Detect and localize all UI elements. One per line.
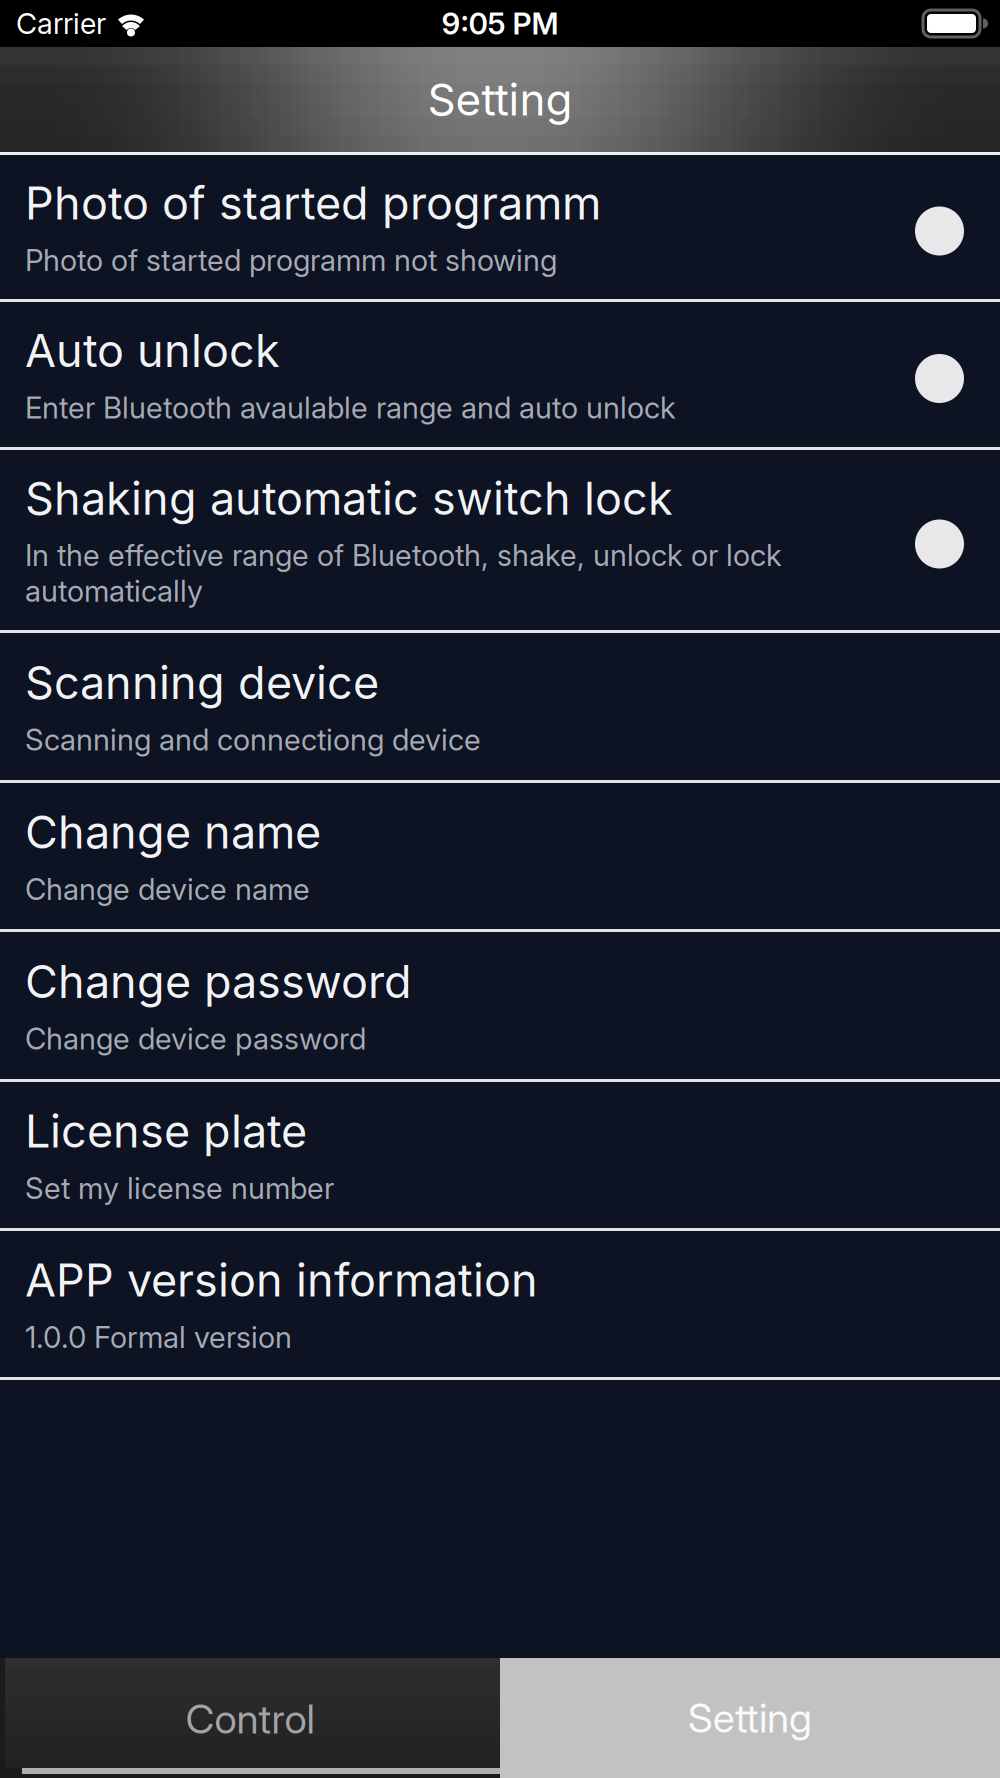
button[interactable]: Change password — [0, 932, 1000, 1082]
staticText: Photo of started programm — [25, 176, 601, 230]
button[interactable]: Control — [0, 1658, 500, 1778]
staticText: Change name — [25, 805, 321, 859]
staticText: APP version information — [25, 1253, 538, 1307]
button[interactable]: Scanning device — [0, 633, 1000, 783]
staticText: Carrier — [16, 6, 106, 41]
button[interactable]: Setting — [500, 1658, 1000, 1778]
staticText: Scanning and connectiong device — [25, 722, 481, 758]
staticText: License plate — [25, 1104, 307, 1158]
staticText: Shaking automatic switch lock — [25, 471, 673, 525]
staticText: 1.0.0 Formal version — [25, 1319, 292, 1355]
staticText: Change device password — [25, 1021, 366, 1057]
staticText: Setting — [427, 73, 572, 126]
staticText: Control — [185, 1695, 314, 1743]
staticText: Setting — [688, 1694, 812, 1742]
staticText: Enter Bluetooth avaulable range and auto… — [25, 390, 676, 426]
staticText: Change device name — [25, 871, 310, 907]
staticText: Scanning device — [25, 655, 379, 710]
staticText: Auto unlock — [25, 323, 280, 378]
button[interactable]: License plate — [0, 1082, 1000, 1231]
button[interactable]: Auto unlock — [0, 302, 1000, 450]
staticText: automatically — [25, 573, 203, 609]
staticText: 9:05 PM — [441, 5, 558, 42]
button[interactable]: APP version information — [0, 1231, 1000, 1380]
staticText: Set my license number — [25, 1170, 334, 1206]
staticText: Photo of started programm not showing — [25, 242, 557, 278]
staticText: In the effective range of Bluetooth, sha… — [25, 537, 782, 573]
staticText: Change password — [25, 954, 412, 1009]
button[interactable]: Shaking automatic switch lock — [0, 450, 1000, 633]
button[interactable]: Photo of started programm — [0, 155, 1000, 302]
button[interactable]: Change name — [0, 783, 1000, 932]
